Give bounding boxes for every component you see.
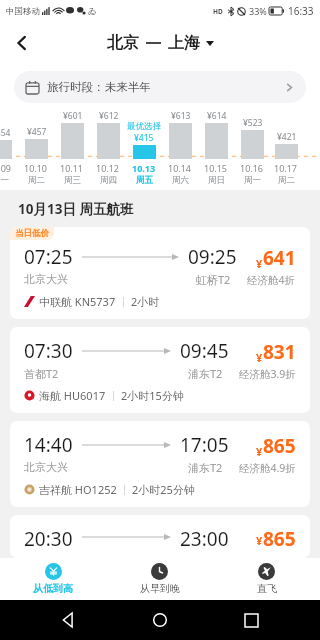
staticText: HD bbox=[213, 7, 223, 16]
staticText: 10.11 bbox=[60, 162, 84, 174]
staticText: 周二 bbox=[28, 175, 45, 186]
staticText: 2小时25分钟 bbox=[132, 482, 195, 497]
button[interactable]: ¥614 bbox=[198, 110, 234, 190]
staticText: ¥ bbox=[256, 444, 263, 459]
button[interactable]: ¥454 bbox=[0, 110, 18, 190]
staticText: 周一 bbox=[0, 175, 9, 186]
staticText: 09:45 bbox=[180, 338, 229, 364]
staticText: 周五 bbox=[136, 175, 153, 186]
staticText: ¥421 bbox=[277, 131, 297, 143]
staticText: 10月13日 周五航班 bbox=[18, 200, 134, 218]
staticText: 直飞 bbox=[257, 582, 277, 595]
staticText: 10.16 bbox=[240, 162, 264, 174]
button[interactable]: Home bbox=[138, 600, 182, 640]
staticText: 吉祥航 HO1252 bbox=[39, 482, 117, 497]
staticText: 经济舱4.9折 bbox=[239, 461, 296, 475]
staticText: 周四 bbox=[100, 175, 117, 186]
button[interactable]: 14:40 bbox=[10, 421, 310, 507]
staticText: 中国移动 bbox=[6, 6, 40, 17]
staticText: 09:25 bbox=[188, 244, 237, 270]
staticText: ¥457 bbox=[27, 126, 47, 138]
staticText: 10.15 bbox=[204, 162, 228, 174]
staticText: 07:25 bbox=[24, 244, 73, 270]
staticText: ¥612 bbox=[99, 110, 119, 122]
staticText: 浦东T2 bbox=[188, 460, 223, 475]
staticText: 2小时15分钟 bbox=[121, 388, 184, 403]
button[interactable]: 从早到晚 bbox=[106, 558, 213, 600]
staticText: 07:30 bbox=[24, 338, 73, 364]
staticText: 从低到高 bbox=[33, 582, 73, 595]
staticText: ¥ bbox=[256, 350, 263, 365]
staticText: 中联航 KN5737 bbox=[39, 294, 116, 309]
staticText: ¥523 bbox=[243, 117, 263, 129]
staticText: 23:00 bbox=[180, 526, 229, 548]
staticText: 浦东T2 bbox=[188, 366, 223, 381]
staticText: 海航 HU6017 bbox=[39, 388, 106, 403]
staticText: 10.10 bbox=[24, 162, 48, 174]
staticText: 周二 bbox=[278, 175, 295, 186]
staticText: 16:33 bbox=[288, 4, 314, 18]
button[interactable]: ¥457 bbox=[18, 110, 54, 190]
staticText: 虹桥T2 bbox=[196, 272, 231, 287]
staticText: 周一 bbox=[244, 175, 261, 186]
staticText: ¥415 bbox=[134, 132, 154, 144]
staticText: 10.09 bbox=[0, 162, 12, 174]
staticText: 641 bbox=[263, 245, 296, 271]
button[interactable]: 07:30 bbox=[10, 327, 310, 413]
staticText: 2小时 bbox=[131, 294, 160, 309]
button[interactable]: 当日低价 bbox=[10, 227, 310, 319]
button[interactable]: 返回 bbox=[0, 22, 44, 64]
staticText: 865 bbox=[263, 526, 296, 548]
staticText: 10.17 bbox=[274, 162, 298, 174]
button[interactable]: Back bbox=[47, 600, 91, 640]
staticText: ¥ bbox=[256, 256, 263, 271]
staticText: 北京 bbox=[107, 33, 139, 53]
staticText: 北京大兴 bbox=[24, 272, 68, 286]
staticText: 经济舱4折 bbox=[247, 273, 296, 287]
staticText: 北京大兴 bbox=[24, 460, 68, 474]
staticText: 10.12 bbox=[96, 162, 120, 174]
staticText: 经济舱3.9折 bbox=[239, 367, 296, 381]
staticText: ¥613 bbox=[171, 110, 191, 122]
button[interactable]: 旅行时段： bbox=[14, 71, 306, 103]
staticText: 14:40 bbox=[24, 432, 73, 458]
staticText: 首都T2 bbox=[24, 366, 59, 381]
button[interactable]: ¥421 bbox=[270, 110, 302, 190]
button[interactable]: ¥613 bbox=[162, 110, 198, 190]
staticText: 17:05 bbox=[180, 432, 229, 458]
staticText: 从早到晚 bbox=[140, 582, 180, 595]
staticText: ゐ bbox=[88, 6, 97, 17]
staticText: 33% bbox=[249, 5, 267, 17]
staticText: 周六 bbox=[172, 175, 189, 186]
staticText: 865 bbox=[263, 433, 296, 459]
button[interactable]: 20:30 bbox=[10, 515, 310, 558]
button[interactable]: 直飞 bbox=[213, 558, 320, 600]
staticText: ¥ bbox=[256, 533, 263, 548]
staticText: 10.13 bbox=[132, 162, 156, 174]
staticText: 10.14 bbox=[168, 162, 192, 174]
button[interactable]: Recents bbox=[229, 600, 273, 640]
staticText: 20:30 bbox=[24, 526, 73, 548]
staticText: 最优选择 bbox=[127, 121, 161, 132]
staticText: 周日 bbox=[208, 175, 225, 186]
staticText: 旅行时段： bbox=[47, 80, 105, 94]
button[interactable]: 从低到高 bbox=[0, 558, 106, 600]
button[interactable]: ¥601 bbox=[54, 110, 90, 190]
staticText: ¥601 bbox=[63, 110, 83, 122]
button[interactable]: ¥612 bbox=[90, 110, 126, 190]
staticText: 上海 bbox=[168, 33, 200, 53]
button[interactable]: ¥523 bbox=[234, 110, 270, 190]
button[interactable]: 最优选择 bbox=[126, 110, 162, 190]
staticText: ¥614 bbox=[207, 110, 227, 122]
staticText: ¥454 bbox=[0, 127, 11, 139]
staticText: 831 bbox=[263, 339, 296, 365]
staticText: 周三 bbox=[64, 175, 81, 186]
button[interactable]: 北京 bbox=[99, 29, 222, 57]
staticText: 未来半年 bbox=[105, 80, 151, 94]
staticText: 当日低价 bbox=[15, 228, 49, 239]
